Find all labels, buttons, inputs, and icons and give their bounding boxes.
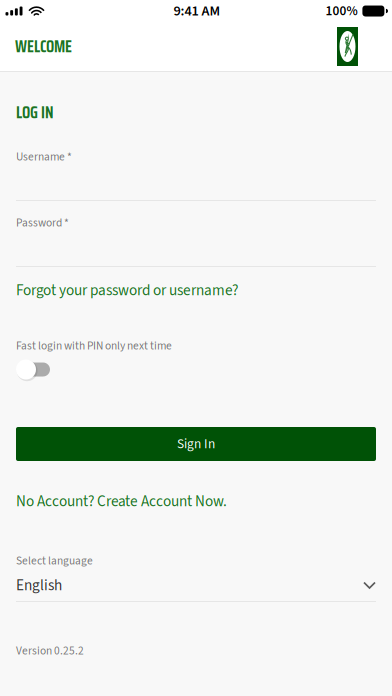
button[interactable]: Username * [16, 149, 376, 201]
staticText: WELCOME [15, 34, 72, 59]
staticText: Password * [16, 215, 69, 231]
button[interactable]: English [16, 574, 376, 602]
button[interactable]: Password * [16, 215, 376, 267]
button[interactable]: Home [337, 27, 392, 66]
staticText: LOG IN [16, 100, 54, 125]
staticText: Select language [16, 553, 93, 569]
staticText: 9:41 AM [173, 1, 220, 21]
button[interactable]: No Account? Create Account Now. [16, 491, 227, 512]
button[interactable]: Fast login with PIN only next time [16, 359, 50, 380]
staticText: Username * [16, 149, 72, 165]
staticText: Sign In [177, 434, 215, 453]
button[interactable]: Forgot your password or username? [16, 280, 238, 301]
staticText: English [16, 575, 62, 596]
staticText: Version 0.25.2 [16, 643, 84, 659]
staticText: 100% [325, 1, 357, 20]
button[interactable]: Sign In [16, 427, 376, 461]
staticText: No Account? Create Account Now. [16, 491, 227, 512]
staticText: Forgot your password or username? [16, 280, 238, 301]
staticText: Fast login with PIN only next time [16, 338, 172, 354]
